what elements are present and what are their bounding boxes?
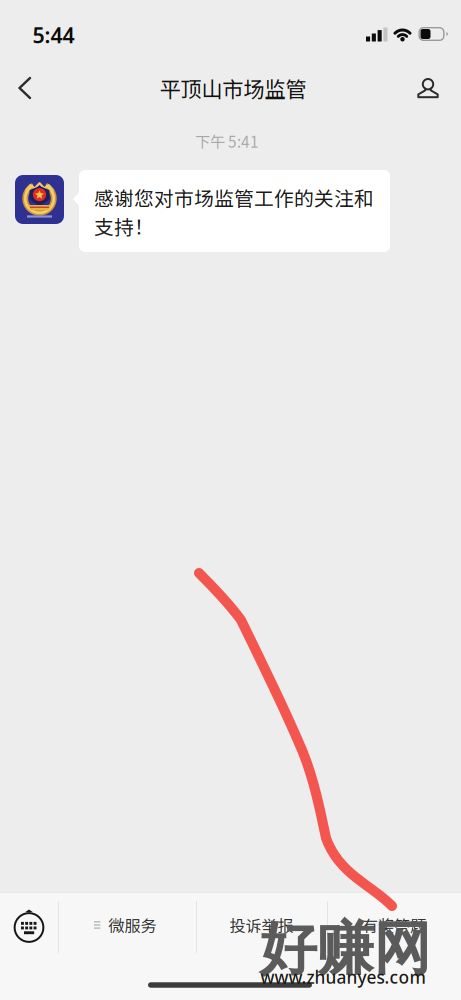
button[interactable]: Contact profile [405,59,451,117]
button[interactable]: Keyboard [0,892,58,962]
staticText: 微服务 [108,913,156,937]
staticText: 下午 5:41 [195,130,259,152]
staticText: www.zhuanyes.com [260,965,425,988]
staticText: 有奖答题 [362,913,426,937]
button[interactable]: Back [2,59,48,117]
button[interactable]: 微服务 [58,892,196,962]
staticText: 感谢您对市场监管工作的关注和支持！ [94,183,374,240]
staticText: 好赚网 [259,913,430,985]
button[interactable]: 投诉举报 [196,890,327,960]
staticText: 投诉举报 [229,913,293,937]
staticText: 平顶山市场监管 [159,73,306,103]
button[interactable]: 有奖答题 [327,890,461,960]
staticText: 5:44 [32,21,74,49]
